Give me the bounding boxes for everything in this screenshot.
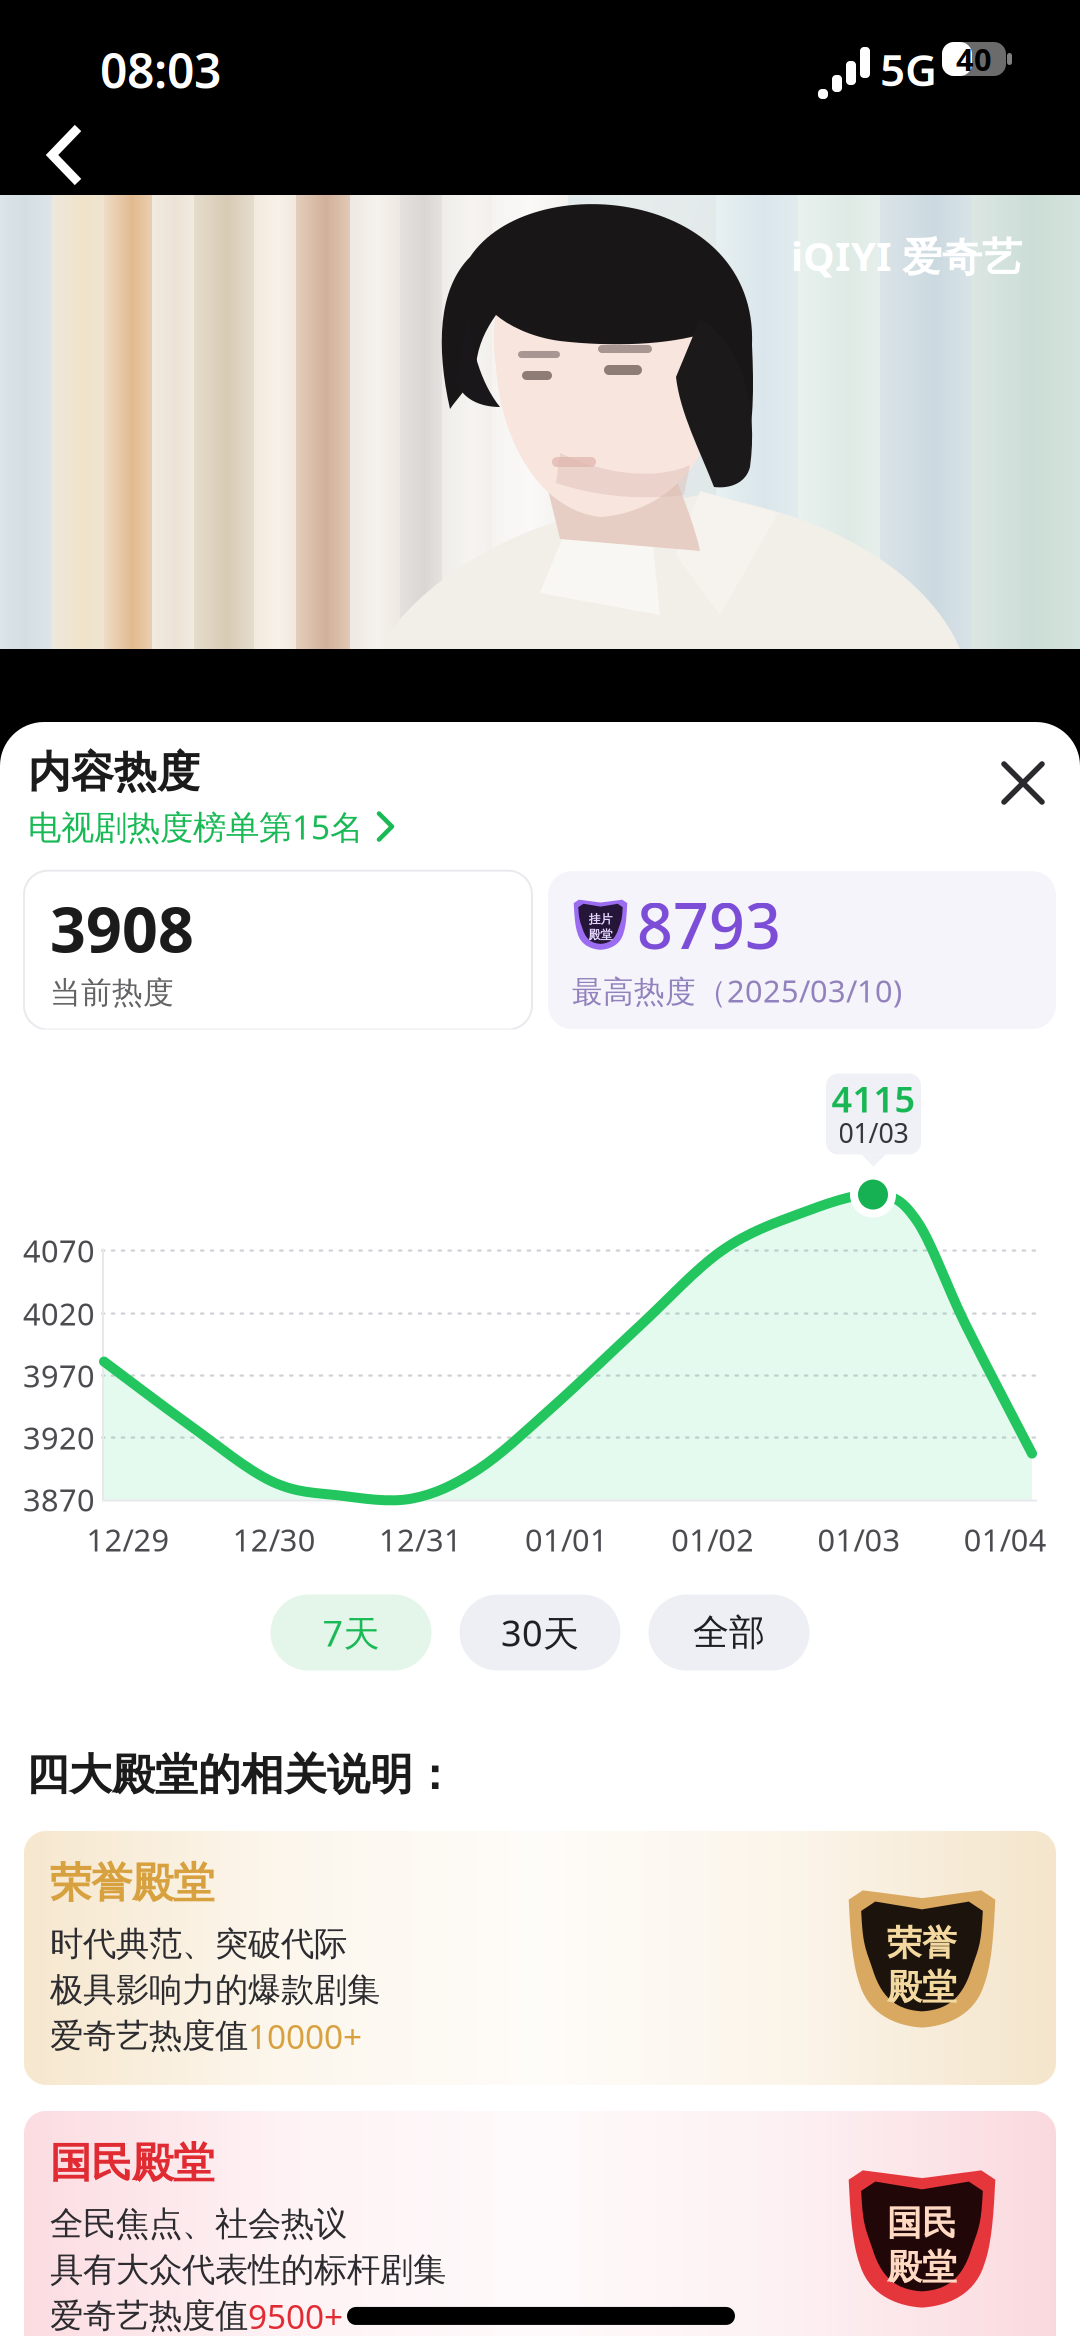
button[interactable]: 7天 (270, 1595, 431, 1671)
staticText: 5G (880, 40, 937, 98)
staticText: 爱奇艺热度值 (50, 2015, 248, 2056)
staticText: 全部 (693, 1610, 765, 1655)
staticText: 7天 (322, 1609, 379, 1656)
staticText: 时代典范、突破代际 (50, 1923, 347, 1964)
staticText: 极具影响力的爆款剧集 (50, 1969, 380, 2010)
staticText: 内容热度 (28, 746, 200, 798)
staticText: 01/03 (838, 1115, 908, 1150)
staticText: 具有大众代表性的标杆剧集 (50, 2249, 446, 2290)
staticText: 最高热度（2025/03/10) (572, 970, 902, 1011)
staticText: 12/30 (233, 1519, 316, 1560)
staticText: 4070 (23, 1230, 95, 1271)
staticText: 3920 (23, 1417, 95, 1458)
button[interactable]: 电视剧热度榜单第15名 (28, 804, 396, 849)
staticText: 荣誉 (887, 1922, 957, 1964)
staticText: 01/04 (964, 1519, 1047, 1560)
staticText: 01/02 (671, 1519, 754, 1560)
staticText: 挂片 (588, 912, 612, 927)
staticText: 爱奇艺热度值 (50, 2295, 248, 2336)
staticText: 01/03 (817, 1519, 900, 1560)
staticText: 3970 (23, 1355, 95, 1396)
staticText: 3870 (23, 1479, 95, 1520)
button[interactable]: Close (986, 746, 1060, 820)
button[interactable]: 30天 (459, 1595, 620, 1671)
staticText: 8793 (637, 883, 781, 966)
button[interactable]: 全部 (648, 1595, 809, 1671)
button[interactable]: Back (16, 106, 114, 204)
staticText: iQIYI 爱奇艺 (791, 229, 1022, 282)
staticText: 12/29 (86, 1519, 169, 1560)
staticText: 当前热度 (50, 974, 174, 1012)
staticText: 荣誉殿堂 (50, 1858, 214, 1908)
staticText: 电视剧热度榜单第15名 (28, 804, 363, 849)
staticText: 08:03 (100, 38, 221, 102)
staticText: 四大殿堂的相关说明： (26, 1749, 456, 1801)
staticText: 国民 (887, 2202, 957, 2244)
staticText: 4020 (23, 1293, 95, 1334)
staticText: 殿堂 (887, 1966, 957, 2009)
staticText: 9500+ (248, 2294, 343, 2336)
staticText: 40 (956, 39, 992, 79)
staticText: 30天 (501, 1609, 579, 1656)
staticText: 10000+ (248, 2014, 362, 2058)
staticText: 殿堂 (887, 2246, 957, 2289)
staticText: 4115 (831, 1075, 915, 1122)
staticText: 01/01 (525, 1519, 608, 1560)
staticText: 全民焦点、社会热议 (50, 2203, 347, 2244)
staticText: 12/31 (379, 1519, 462, 1560)
staticText: 国民殿堂 (50, 2138, 214, 2188)
staticText: 殿堂 (588, 927, 612, 942)
staticText: 3908 (50, 887, 194, 970)
